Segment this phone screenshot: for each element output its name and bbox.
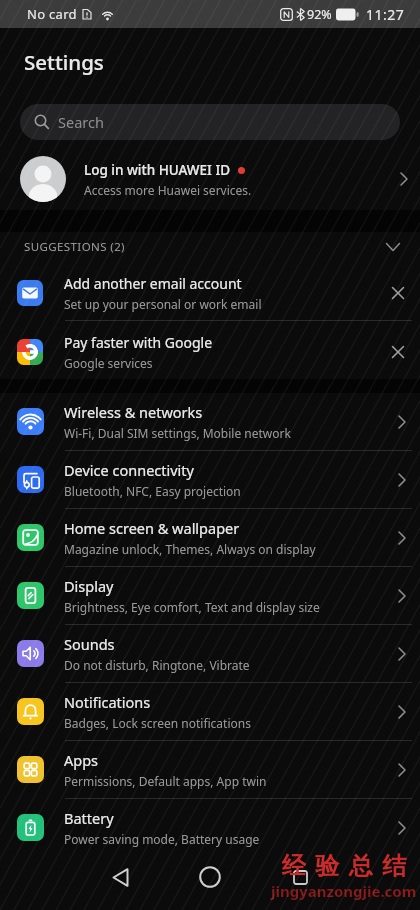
staticText: 经验总结	[277, 851, 411, 881]
button[interactable]: Add another email account	[0, 262, 420, 320]
staticText: Set up your personal or work email	[64, 296, 262, 312]
staticText: Do not disturb, Ringtone, Vibrate	[64, 657, 250, 673]
button[interactable]: Home screen & wallpaper	[0, 509, 420, 566]
button[interactable]: Battery	[0, 799, 420, 856]
staticText: Log in with HUAWEI ID	[84, 161, 231, 179]
button[interactable]: SUGGESTIONS (2)	[0, 232, 420, 262]
staticText: Brightness, Eye comfort, Text and displa…	[64, 599, 320, 615]
button[interactable]: Wireless & networks	[0, 393, 420, 450]
button[interactable]: Search	[20, 104, 400, 140]
button[interactable]: Log in with HUAWEI ID	[0, 148, 420, 210]
staticText: Power saving mode, Battery usage	[64, 831, 260, 847]
button[interactable]: Device connectivity	[0, 451, 420, 508]
button[interactable]: Display	[0, 567, 420, 624]
staticText: SUGGESTIONS (2)	[24, 239, 125, 255]
staticText: 11:27	[366, 5, 405, 24]
staticText: Apps	[64, 750, 99, 770]
button[interactable]: Apps	[0, 741, 420, 798]
staticText: Badges, Lock screen notifications	[64, 715, 251, 731]
button[interactable]	[100, 857, 140, 897]
staticText: No card	[27, 5, 77, 23]
staticText: Google services	[64, 355, 153, 371]
button[interactable]: Notifications	[0, 683, 420, 740]
button[interactable]	[280, 857, 320, 897]
staticText: Sounds	[64, 634, 115, 654]
staticText: Access more Huawei services.	[84, 182, 252, 198]
staticText: jingyanzongjie.com	[271, 881, 417, 901]
staticText: Display	[64, 576, 114, 596]
staticText: 92%	[307, 6, 332, 23]
staticText: Battery	[64, 808, 114, 828]
button[interactable]	[190, 857, 230, 897]
staticText: Wi-Fi, Dual SIM settings, Mobile network	[64, 425, 291, 441]
staticText: Notifications	[64, 692, 151, 712]
staticText: Wireless & networks	[64, 402, 203, 422]
staticText: Home screen & wallpaper	[64, 518, 240, 538]
staticText: Search	[58, 112, 104, 132]
staticText: Pay faster with Google	[64, 333, 213, 352]
button[interactable]: Pay faster with Google	[0, 321, 420, 379]
staticText: Magazine unlock, Themes, Always on displ…	[64, 541, 316, 557]
staticText: Settings	[24, 48, 104, 76]
button[interactable]: Sounds	[0, 625, 420, 682]
staticText: Add another email account	[64, 274, 242, 293]
staticText: Device connectivity	[64, 460, 194, 480]
staticText: Permissions, Default apps, App twin	[64, 773, 267, 789]
staticText: Bluetooth, NFC, Easy projection	[64, 483, 241, 499]
